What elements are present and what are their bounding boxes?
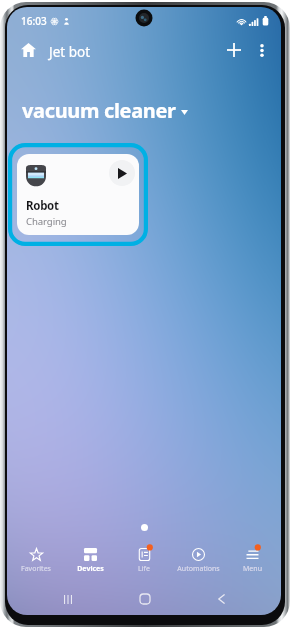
button[interactable]: Favorites: [9, 544, 63, 575]
staticText: Favorites: [21, 564, 51, 574]
button[interactable]: More options: [248, 36, 276, 64]
staticText: Charging: [26, 215, 67, 228]
button[interactable]: Menu: [225, 544, 279, 575]
button[interactable]: Devices: [63, 544, 117, 575]
button[interactable]: Start cleaning: [109, 160, 135, 186]
staticText: Automations: [177, 564, 220, 574]
staticText: 16:03: [21, 14, 47, 28]
staticText: Menu: [243, 564, 262, 574]
button[interactable]: Life: [117, 544, 171, 575]
staticText: Life: [138, 564, 150, 574]
button[interactable]: Recents: [29, 590, 106, 608]
button[interactable]: Start cleaning: [8, 143, 148, 246]
staticText: Robot: [26, 198, 59, 214]
staticText: Jet bot: [49, 43, 91, 61]
button[interactable]: Home: [14, 36, 42, 64]
button[interactable]: Back: [183, 590, 260, 608]
staticText: Devices: [77, 564, 104, 574]
button[interactable]: Home: [106, 590, 183, 608]
staticText: vacuum cleaner: [22, 97, 176, 124]
button[interactable]: Automations: [171, 544, 225, 575]
button[interactable]: Add device: [220, 36, 248, 64]
